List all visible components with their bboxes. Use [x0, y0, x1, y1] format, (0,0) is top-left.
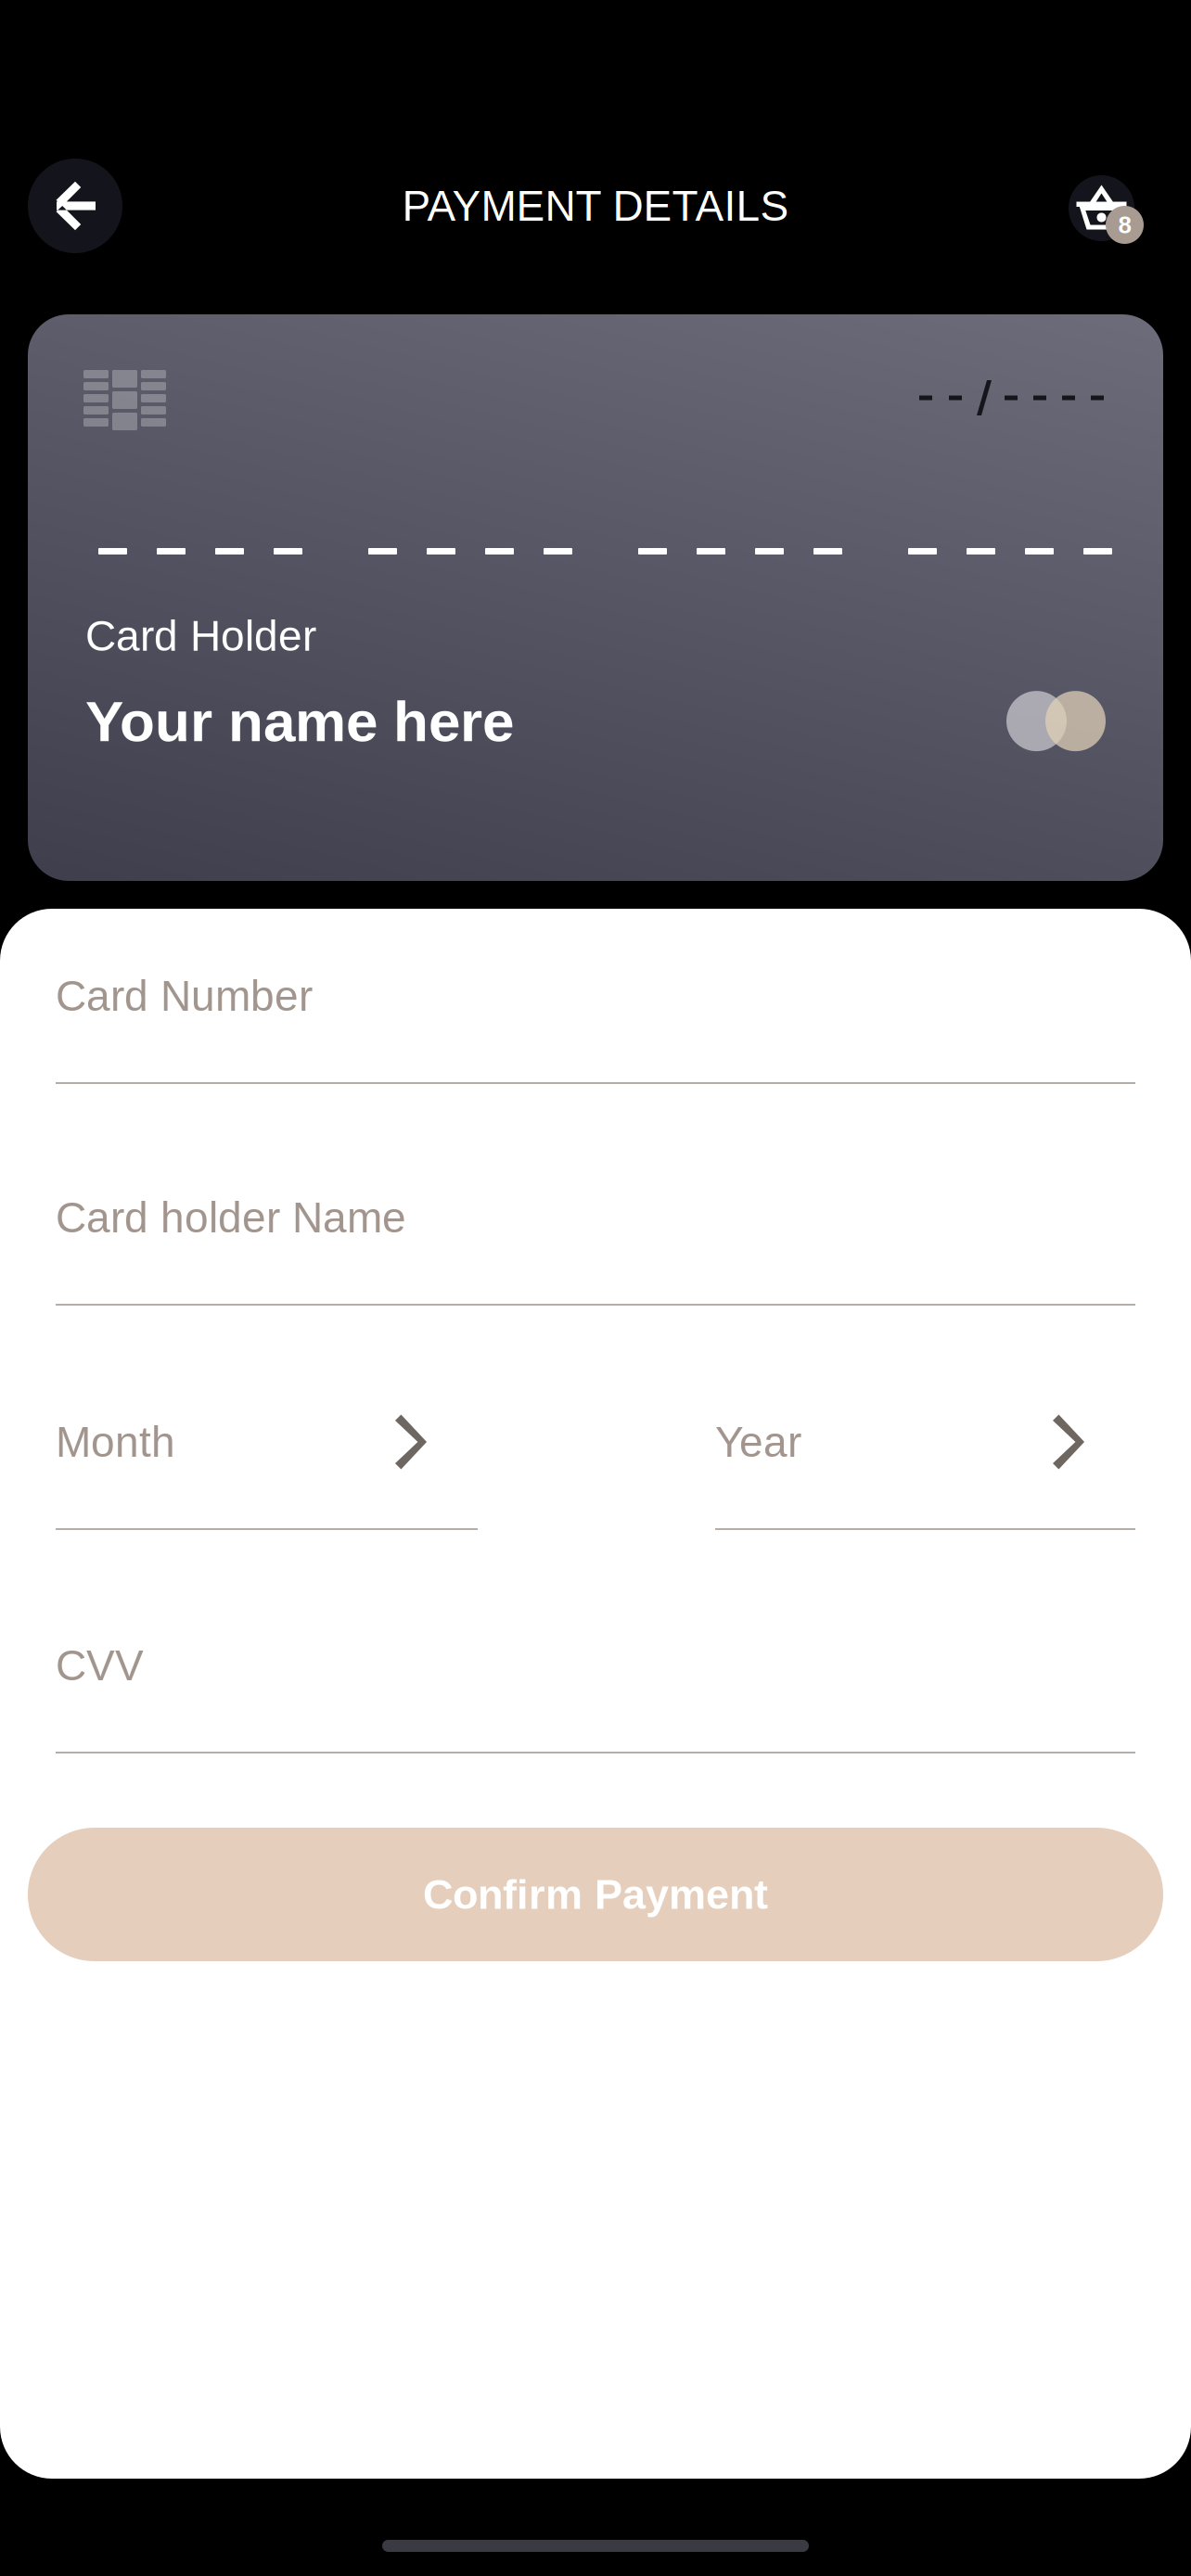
staticText: Card holder Name — [56, 1194, 406, 1241]
staticText: Year — [715, 1418, 801, 1466]
button[interactable]: CVV — [56, 1616, 1135, 1753]
button[interactable]: Cart, 8 items — [1069, 159, 1163, 253]
staticText: Your name here — [85, 689, 514, 753]
button[interactable]: Month — [56, 1393, 478, 1530]
staticText: PAYMENT DETAILS — [402, 182, 789, 230]
button[interactable]: Year — [715, 1393, 1135, 1530]
button[interactable]: Card Number — [56, 947, 1135, 1084]
button[interactable]: Card holder Name — [56, 1168, 1135, 1306]
staticText: Month — [56, 1418, 175, 1466]
staticText: 8 — [1118, 211, 1131, 238]
button[interactable]: Confirm Payment — [28, 1828, 1163, 1961]
staticText: Card Number — [56, 972, 313, 1020]
staticText: Card Holder — [85, 612, 316, 660]
staticText: Confirm Payment — [423, 1871, 768, 1918]
button[interactable]: Back — [28, 159, 122, 253]
staticText: CVV — [56, 1642, 144, 1689]
